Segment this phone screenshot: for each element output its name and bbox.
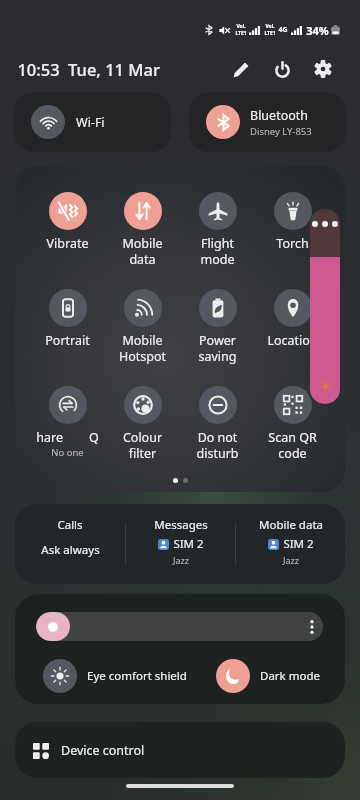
staticText: Disney LY-853	[250, 125, 312, 138]
staticText: Wi-Fi	[76, 114, 105, 131]
button[interactable]: Location	[255, 289, 330, 349]
button[interactable]: Colour filter	[105, 386, 180, 462]
button[interactable]: Device control	[15, 722, 345, 778]
button[interactable]: Portrait	[30, 289, 105, 349]
staticText: Bluetooth	[250, 107, 309, 124]
button[interactable]: Flight mode	[180, 192, 255, 268]
staticText: Location	[255, 332, 330, 349]
staticText: Flight mode	[180, 235, 255, 268]
staticText: Tue, 11 Mar	[68, 58, 160, 80]
staticText: Messages	[154, 517, 208, 533]
button[interactable]: Torch	[255, 192, 330, 252]
staticText: hare Q	[30, 429, 105, 446]
button[interactable]: Scan QR code	[255, 386, 330, 462]
button[interactable]: Wi-Fi	[14, 92, 171, 152]
staticText: Vibrate	[30, 235, 105, 252]
button[interactable]: Mobile data	[105, 192, 180, 268]
button[interactable]: Brightness slider	[310, 209, 340, 404]
button[interactable]: Eye comfort shield	[43, 659, 187, 693]
button[interactable]: Edit quick settings	[227, 55, 255, 83]
staticText: Jazz	[173, 554, 189, 566]
staticText: 10:53	[17, 58, 60, 80]
button[interactable]: Power saving	[180, 289, 255, 365]
staticText: LTE1	[264, 30, 276, 37]
staticText: VoL	[265, 23, 275, 30]
staticText: LTE1	[235, 30, 247, 37]
button[interactable]: hare Q	[30, 386, 105, 459]
staticText: Calls	[57, 517, 83, 533]
staticText: 34%	[306, 23, 329, 38]
staticText: Scan QR code	[255, 429, 330, 462]
staticText: Dark mode	[260, 668, 320, 684]
button[interactable]: Messages	[126, 517, 235, 572]
staticText: 4G	[278, 25, 288, 35]
button[interactable]: Power off	[268, 55, 296, 83]
staticText: SIM 2	[283, 536, 314, 552]
button[interactable]: Calls	[15, 517, 125, 571]
button[interactable]: Do not disturb	[180, 386, 255, 462]
staticText: Jazz	[283, 554, 299, 566]
staticText: Do not disturb	[180, 429, 255, 462]
staticText: Colour filter	[105, 429, 180, 462]
staticText: SIM 2	[173, 536, 204, 552]
staticText: Eye comfort shield	[87, 668, 187, 684]
staticText: Torch	[255, 235, 330, 252]
button[interactable]: Dark mode	[216, 659, 320, 693]
staticText: Ask always	[41, 542, 100, 558]
staticText: Device control	[61, 742, 145, 759]
button[interactable]: Brightness	[36, 612, 323, 641]
staticText: Portrait	[30, 332, 105, 349]
button[interactable]: Bluetooth	[189, 92, 346, 152]
staticText: Mobile Hotspot	[105, 332, 180, 365]
button[interactable]: Mobile data	[236, 517, 345, 572]
staticText: VoL	[236, 23, 246, 30]
staticText: Power saving	[180, 332, 255, 365]
button[interactable]: Settings	[309, 55, 337, 83]
button[interactable]: Vibrate	[30, 192, 105, 252]
button[interactable]: Mobile Hotspot	[105, 289, 180, 365]
staticText: No one	[30, 446, 105, 459]
staticText: Mobile data	[105, 235, 180, 268]
staticText: Mobile data	[259, 517, 323, 533]
